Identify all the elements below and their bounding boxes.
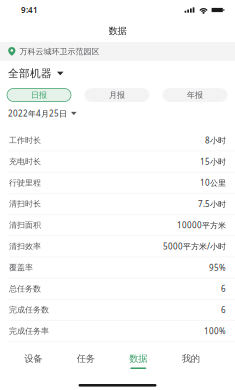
staticText: 6 <box>221 305 226 315</box>
staticText: 15小时 <box>200 156 226 167</box>
staticText: 工作时长 <box>9 135 41 145</box>
button[interactable]: 年报 <box>163 88 227 101</box>
staticText: 总任务数 <box>9 284 41 294</box>
staticText: 8小时 <box>205 135 226 146</box>
button[interactable]: 全部机器 <box>0 61 235 86</box>
staticText: 设备 <box>24 353 42 364</box>
staticText: 我的 <box>182 353 200 364</box>
staticText: 任务 <box>77 353 95 364</box>
staticText: 清扫时长 <box>9 199 41 209</box>
staticText: 7.5小时 <box>198 199 226 209</box>
staticText: 数据 <box>129 353 147 364</box>
button[interactable]: 设备 <box>7 351 59 371</box>
staticText: 年报 <box>187 90 203 100</box>
button[interactable]: 日报 <box>7 88 71 101</box>
staticText: 6 <box>221 283 226 294</box>
staticText: 行驶里程 <box>9 178 41 188</box>
staticText: 2022年4月25日 <box>8 108 67 119</box>
staticText: 日报 <box>31 90 47 100</box>
staticText: 全部机器 <box>8 67 52 80</box>
staticText: 5000平方米/小时 <box>163 241 226 252</box>
staticText: 10公里 <box>200 177 226 188</box>
staticText: 100% <box>204 326 226 336</box>
staticText: 95% <box>209 262 226 273</box>
staticText: 覆盖率 <box>9 263 33 272</box>
staticText: 数据 <box>108 25 126 37</box>
staticText: 月报 <box>109 90 125 100</box>
button[interactable]: 数据 <box>112 351 164 371</box>
button[interactable]: 我的 <box>164 351 217 371</box>
staticText: 完成任务数 <box>9 305 49 315</box>
staticText: 万科云城环卫示范园区 <box>20 47 100 56</box>
button[interactable]: 任务 <box>59 351 112 371</box>
button[interactable]: 2022年4月25日 <box>0 104 235 123</box>
staticText: 10000平方米 <box>177 220 226 230</box>
staticText: 完成任务率 <box>9 326 49 336</box>
staticText: 9:41 <box>21 5 38 15</box>
button[interactable]: 月报 <box>85 88 149 101</box>
staticText: 清扫效率 <box>9 241 41 251</box>
staticText: 清扫面积 <box>9 220 41 230</box>
staticText: 充电时长 <box>9 157 41 166</box>
